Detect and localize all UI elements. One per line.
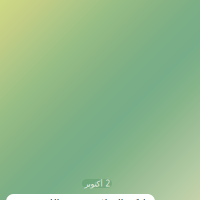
staticText: وعليكم السلام ورحمة الله <box>43 197 157 200</box>
staticText: 2 أكتوبر <box>84 178 110 189</box>
button[interactable]: 2 أكتوبر <box>82 179 112 188</box>
